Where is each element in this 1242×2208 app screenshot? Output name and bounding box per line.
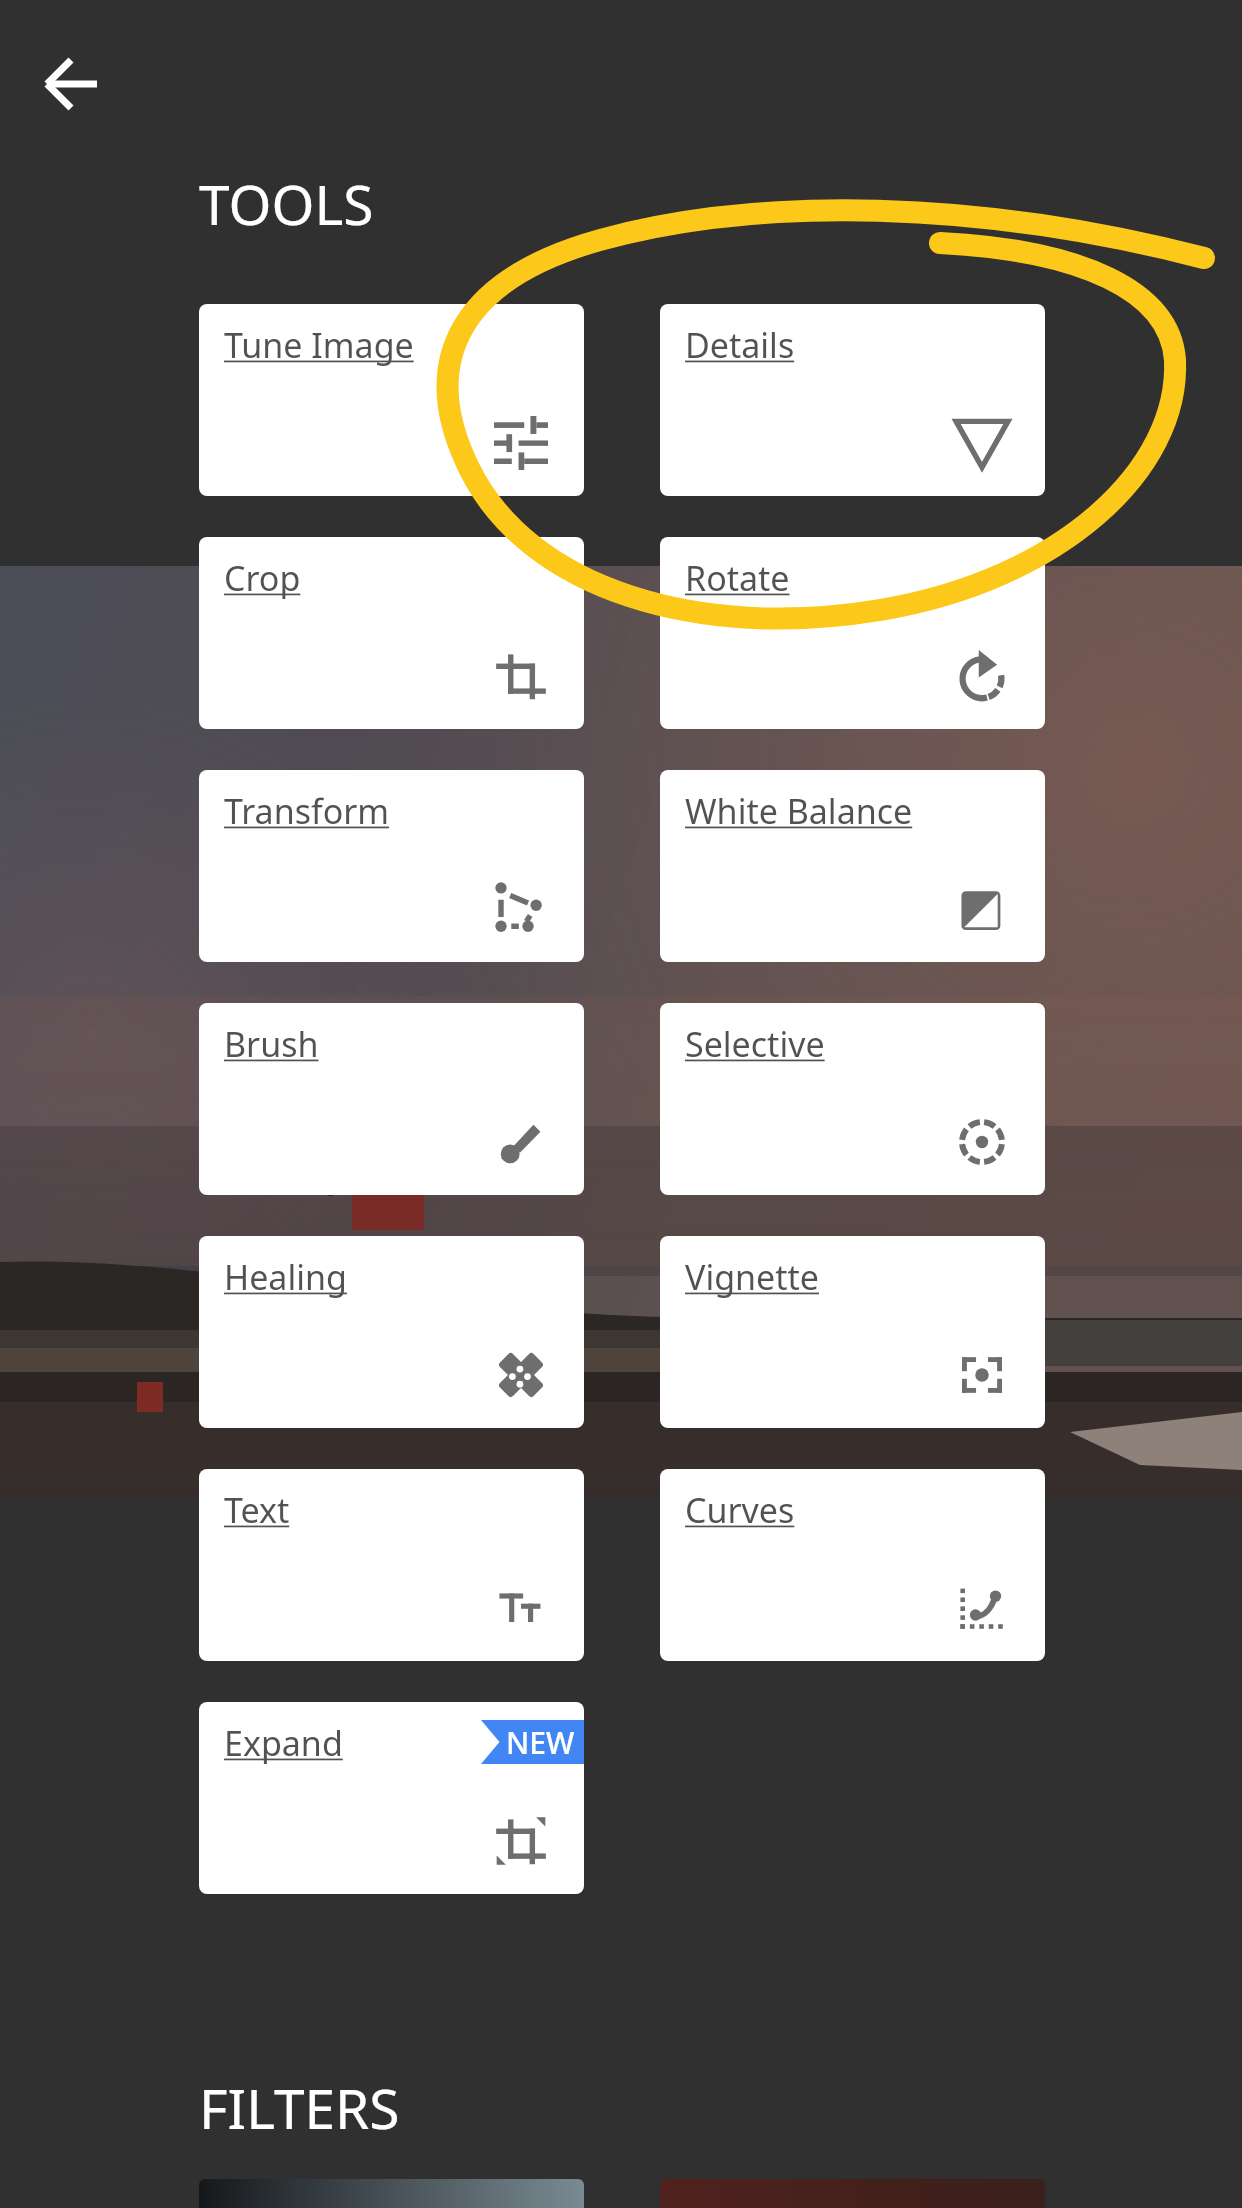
button[interactable]: [660, 2179, 1045, 2208]
button[interactable]: Details: [660, 304, 1045, 496]
button[interactable]: Transform: [199, 770, 584, 962]
button[interactable]: Expand: [199, 1702, 584, 1894]
staticText: Text: [224, 1487, 290, 1533]
button[interactable]: Text: [199, 1469, 584, 1661]
staticText: TOOLS: [199, 166, 374, 241]
staticText: Details: [685, 322, 795, 368]
staticText: Selective: [685, 1021, 825, 1067]
button[interactable]: Rotate: [660, 537, 1045, 729]
staticText: Brush: [224, 1021, 319, 1067]
staticText: White Balance: [685, 788, 913, 834]
staticText: Tune Image: [224, 322, 414, 368]
staticText: Crop: [224, 555, 301, 601]
button[interactable]: Tune Image: [199, 304, 584, 496]
staticText: Healing: [224, 1254, 347, 1300]
button[interactable]: Back: [24, 36, 120, 132]
staticText: Vignette: [685, 1254, 819, 1300]
button[interactable]: Curves: [660, 1469, 1045, 1661]
staticText: Transform: [224, 788, 390, 834]
staticText: NEW: [506, 1722, 575, 1763]
staticText: FILTERS: [199, 2070, 400, 2145]
button[interactable]: Brush: [199, 1003, 584, 1195]
button[interactable]: [199, 2179, 584, 2208]
staticText: Expand: [224, 1720, 343, 1766]
button[interactable]: Vignette: [660, 1236, 1045, 1428]
staticText: Rotate: [685, 555, 790, 601]
button[interactable]: Selective: [660, 1003, 1045, 1195]
staticText: Curves: [685, 1487, 795, 1533]
button[interactable]: Crop: [199, 537, 584, 729]
button[interactable]: White Balance: [660, 770, 1045, 962]
button[interactable]: Healing: [199, 1236, 584, 1428]
